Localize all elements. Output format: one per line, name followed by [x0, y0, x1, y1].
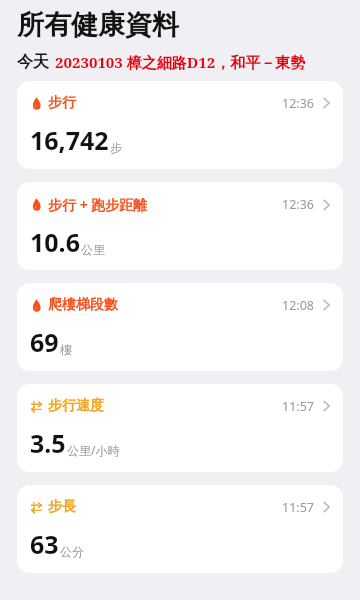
staticText: 樓	[60, 342, 72, 357]
other: Activity	[30, 198, 43, 211]
other: Activity	[30, 299, 43, 312]
staticText: 3.5	[30, 426, 66, 460]
staticText: 公里/小時	[67, 442, 120, 458]
staticText: 12:08	[282, 297, 314, 314]
staticText: 公里	[81, 242, 105, 257]
button[interactable]: Activity	[17, 81, 343, 169]
button[interactable]: Speed	[17, 485, 343, 573]
staticText: 步行速度	[48, 397, 104, 415]
staticText: 今天	[17, 52, 49, 72]
staticText: 11:57	[282, 398, 314, 415]
staticText: 10.6	[30, 225, 80, 259]
staticText: 所有健康資料	[17, 8, 179, 42]
staticText: 步	[110, 140, 122, 155]
staticText: 11:57	[282, 499, 314, 516]
staticText: 69	[30, 325, 59, 359]
staticText: 步行 + 跑步距離	[48, 195, 148, 214]
staticText: 公分	[60, 544, 84, 559]
button[interactable]: Speed	[17, 384, 343, 472]
staticText: 16,742	[30, 123, 109, 157]
staticText: 12:36	[282, 95, 314, 112]
other: Speed	[30, 501, 43, 514]
button[interactable]: Activity	[17, 283, 343, 371]
button[interactable]: Activity	[17, 182, 343, 270]
staticText: 步行	[48, 94, 76, 112]
other: Speed	[30, 400, 43, 413]
staticText: 12:36	[282, 196, 314, 213]
staticText: 爬樓梯段數	[48, 296, 118, 314]
staticText: 63	[30, 527, 59, 561]
staticText: 步長	[48, 498, 76, 516]
other: Activity	[30, 97, 43, 110]
staticText: 20230103 樟之細路D12，和平－東勢	[55, 52, 306, 72]
